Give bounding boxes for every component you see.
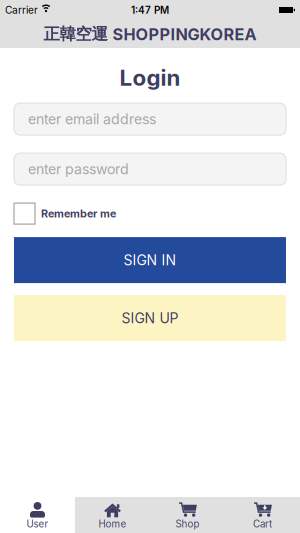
button[interactable]: Remember me checkbox — [14, 203, 35, 224]
staticText: Home — [98, 518, 126, 530]
staticText: Carrier — [5, 4, 38, 16]
staticText: User — [26, 518, 48, 530]
staticText: SIGN UP — [121, 310, 178, 326]
button[interactable]: Cart — [225, 497, 300, 533]
button[interactable]: Shop — [150, 497, 225, 533]
staticText: Login — [119, 64, 180, 91]
staticText: Remember me — [41, 207, 116, 220]
button[interactable]: SIGN UP — [14, 295, 286, 341]
button[interactable]: User — [0, 497, 75, 533]
staticText: Shop — [175, 518, 199, 530]
staticText: Cart — [253, 518, 272, 530]
button[interactable]: Home — [75, 497, 150, 533]
button[interactable]: SIGN IN — [14, 237, 286, 283]
button[interactable]: enter email address — [14, 103, 286, 135]
staticText: enter password — [28, 161, 129, 178]
staticText: 1:47 PM — [131, 4, 169, 16]
staticText: SIGN IN — [123, 252, 176, 268]
button[interactable]: enter password — [14, 153, 286, 185]
staticText: 正韓空運 SHOPPINGKOREA — [43, 24, 256, 44]
staticText: enter email address — [28, 111, 156, 128]
